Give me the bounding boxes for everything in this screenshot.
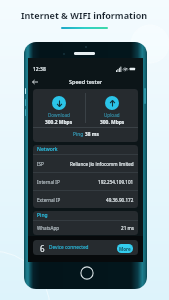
button[interactable]: Internal IP <box>33 172 138 190</box>
staticText: Ping <box>73 131 85 138</box>
staticText: 38 ms <box>85 131 99 138</box>
staticText: Reliance jio infocomm limited <box>70 161 134 167</box>
staticText: 6 <box>40 243 45 254</box>
button[interactable]: Upload <box>86 89 138 126</box>
button[interactable]: External IP <box>33 190 138 208</box>
staticText: Ping <box>37 212 48 219</box>
button[interactable]: More <box>117 244 133 253</box>
staticText: ISP <box>37 161 44 167</box>
staticText: External IP <box>37 197 61 203</box>
staticText: 21 ms <box>121 225 134 231</box>
staticText: Device connected <box>49 244 89 251</box>
staticText: 300.2 Mbps <box>45 119 73 126</box>
button[interactable]: Download <box>33 89 85 126</box>
staticText: Internal IP <box>37 179 60 185</box>
staticText: 300. Mbps <box>100 119 125 126</box>
staticText: 192.254.109.101 <box>98 179 134 185</box>
button[interactable]: ISP <box>33 154 138 172</box>
button[interactable]: WhatsApp <box>33 220 138 235</box>
staticText: Speed tester <box>69 78 103 85</box>
staticText: 12:38 <box>33 66 46 73</box>
staticText: Download <box>48 112 70 118</box>
button[interactable]: Back <box>30 77 40 87</box>
staticText: Network <box>37 146 58 153</box>
staticText: More <box>119 246 131 252</box>
staticText: 49.36.90.172 <box>106 197 134 203</box>
staticText: Upload <box>104 112 120 118</box>
staticText: Internet & WIFI information <box>21 9 148 21</box>
staticText: WhatsApp <box>37 225 60 231</box>
